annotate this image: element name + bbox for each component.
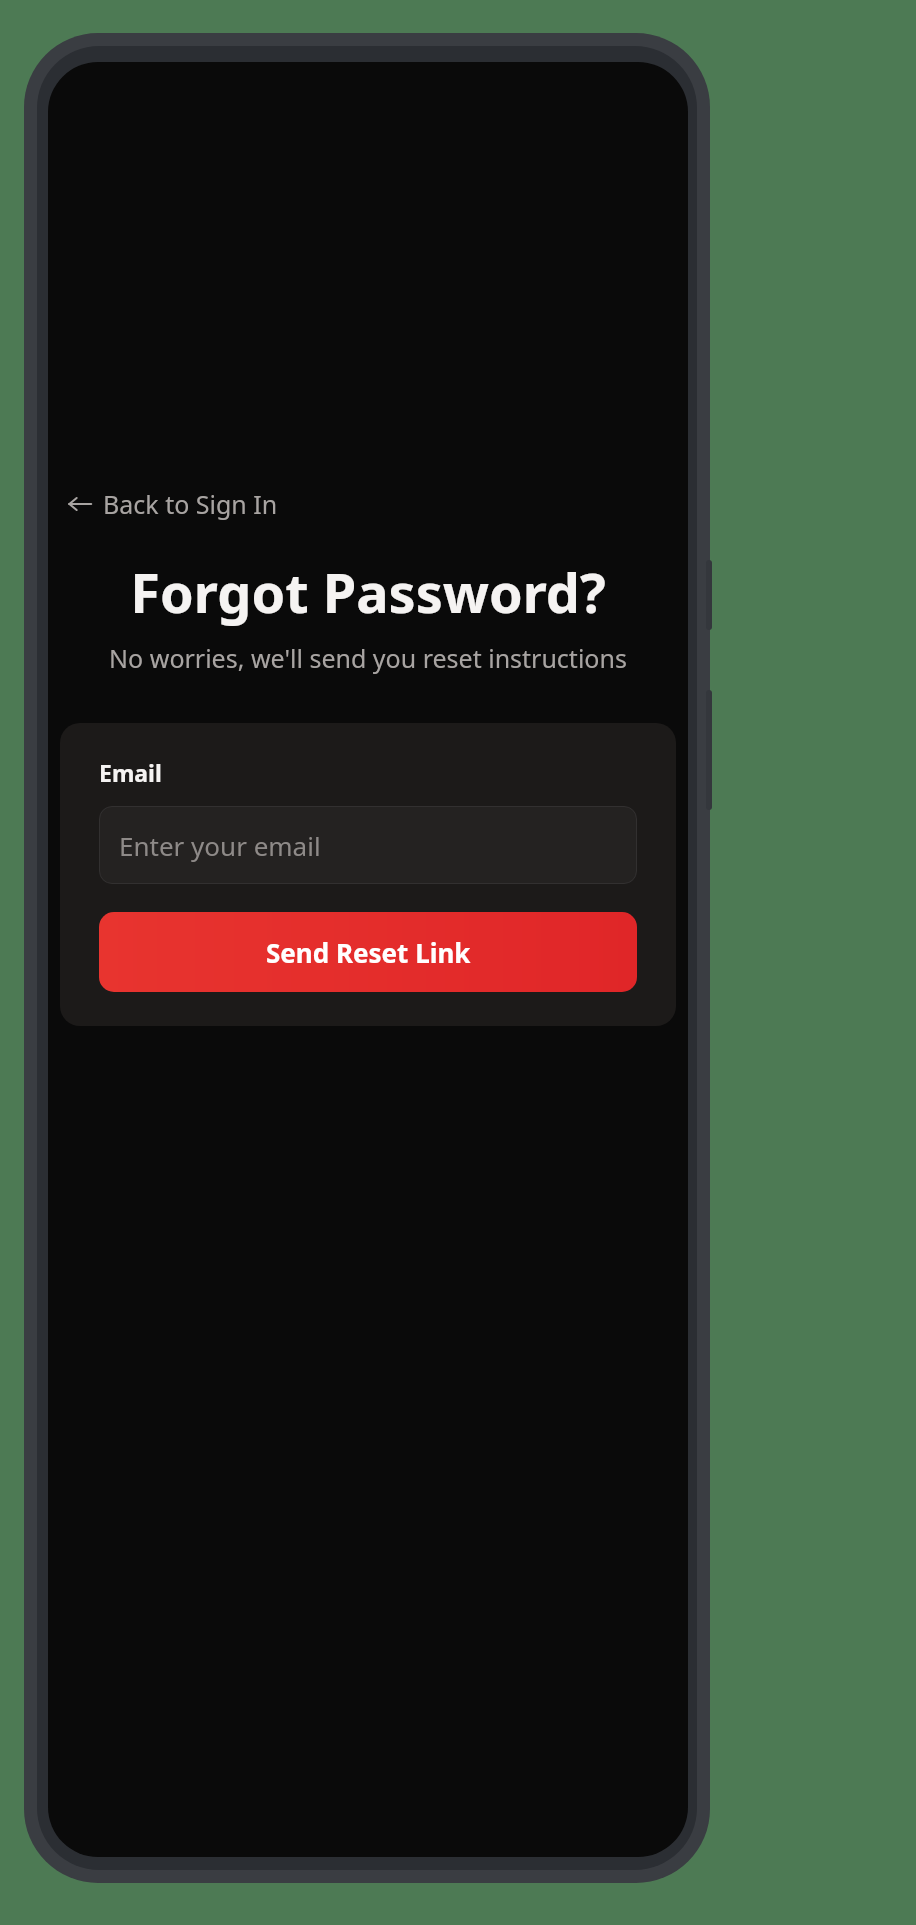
button[interactable]: Send Reset Link: [99, 912, 637, 992]
staticText: Enter your email: [119, 828, 321, 863]
button[interactable]: Enter your email: [99, 806, 637, 884]
staticText: Back to Sign In: [103, 487, 278, 521]
staticText: No worries, we'll send you reset instruc…: [48, 641, 688, 675]
staticText: Send Reset Link: [266, 935, 471, 970]
staticText: Forgot Password?: [48, 555, 688, 629]
button[interactable]: Back to Sign In: [62, 481, 282, 527]
staticText: Email: [99, 757, 162, 788]
